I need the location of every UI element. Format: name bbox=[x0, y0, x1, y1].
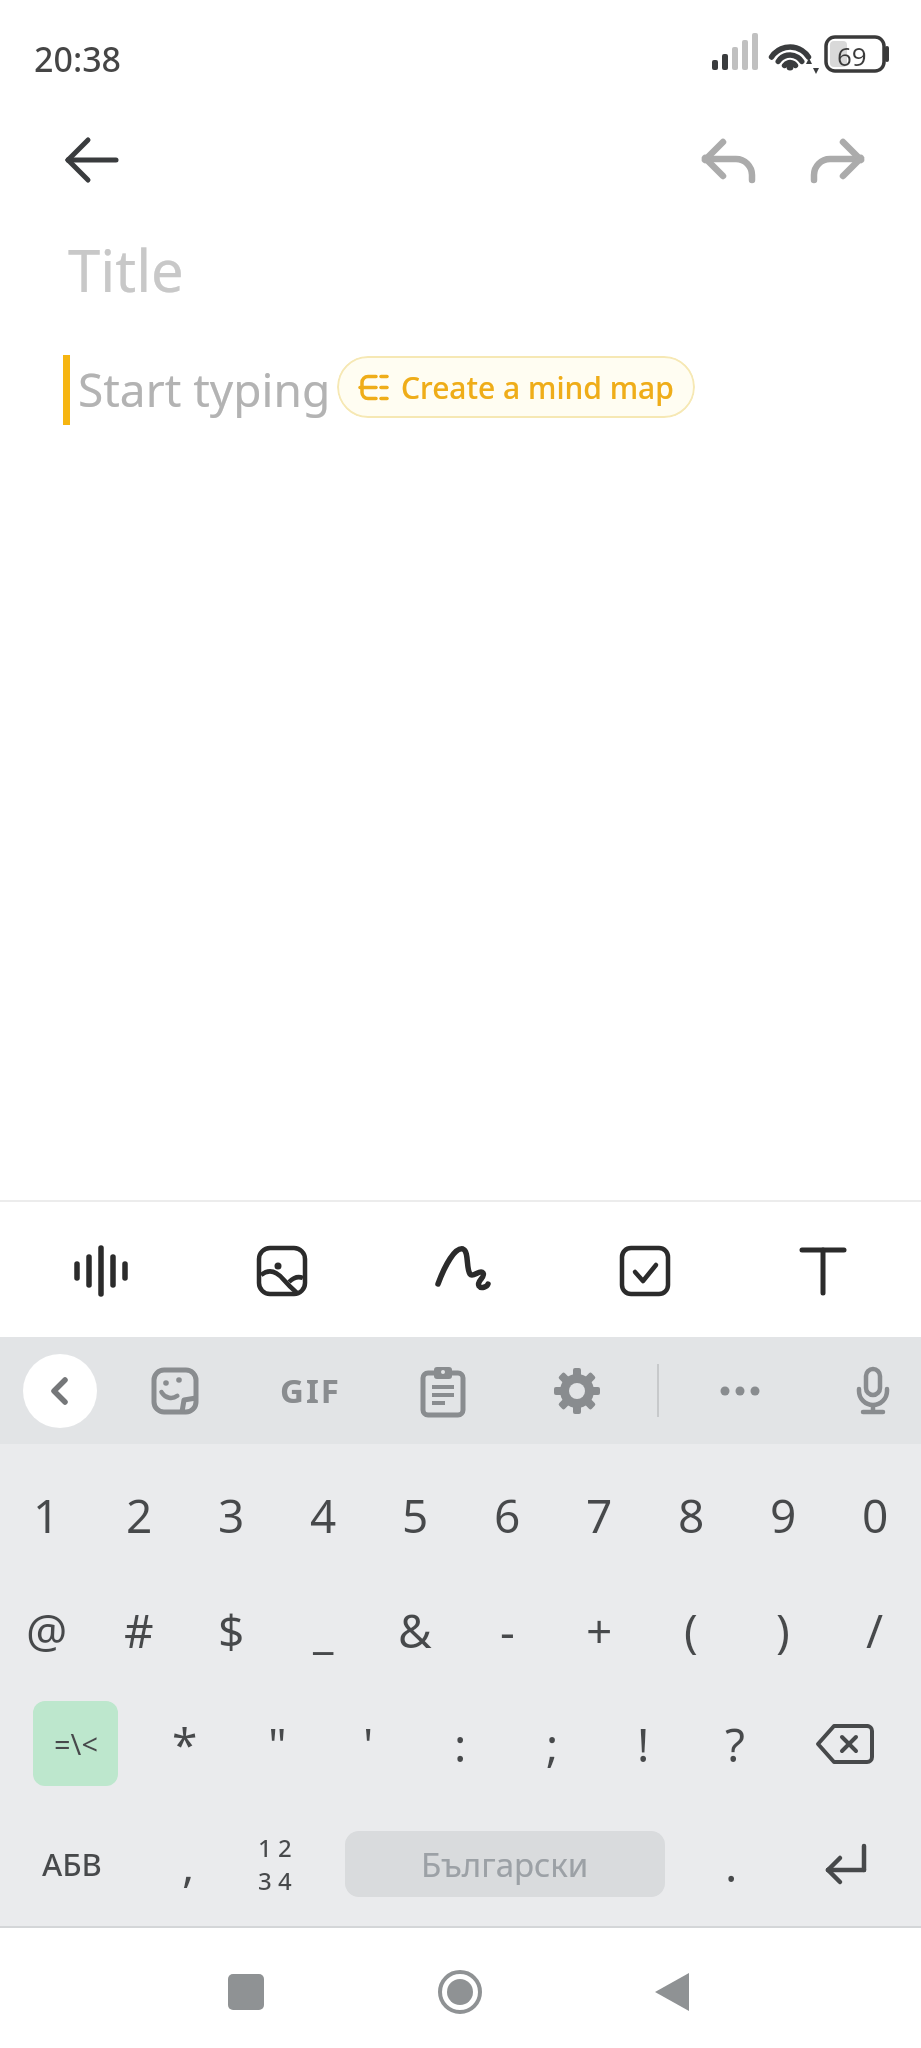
button[interactable] bbox=[790, 1694, 900, 1794]
staticText: 20:38 bbox=[34, 36, 122, 82]
button[interactable] bbox=[790, 1814, 900, 1914]
button[interactable]: GIF bbox=[250, 1337, 370, 1444]
staticText: 5 bbox=[402, 1484, 429, 1547]
staticText: 3 bbox=[218, 1484, 245, 1547]
staticText: ) bbox=[776, 1599, 790, 1662]
staticText: + bbox=[586, 1599, 613, 1662]
button[interactable]: 7 bbox=[553, 1455, 645, 1575]
button[interactable]: * bbox=[139, 1684, 231, 1804]
staticText: 69 bbox=[837, 38, 867, 73]
button[interactable] bbox=[418, 1226, 508, 1316]
staticText: " bbox=[268, 1713, 287, 1776]
staticText: Create a mind map bbox=[401, 367, 674, 408]
button[interactable]: 4 bbox=[277, 1455, 369, 1575]
staticText: ( bbox=[684, 1599, 698, 1662]
button[interactable] bbox=[50, 120, 130, 200]
staticText: 6 bbox=[494, 1484, 521, 1547]
staticText: . bbox=[725, 1833, 738, 1896]
button[interactable] bbox=[695, 1346, 785, 1436]
button[interactable]: АБВ bbox=[12, 1804, 132, 1924]
button[interactable]: 5 bbox=[369, 1455, 461, 1575]
button[interactable]: 8 bbox=[645, 1455, 737, 1575]
button[interactable] bbox=[237, 1226, 327, 1316]
button[interactable] bbox=[778, 1226, 868, 1316]
staticText: ; bbox=[546, 1713, 559, 1776]
button[interactable]: _ bbox=[277, 1570, 369, 1690]
staticText: 2 bbox=[126, 1484, 153, 1547]
staticText: GIF bbox=[280, 1368, 341, 1413]
button[interactable]: 2 bbox=[93, 1455, 185, 1575]
staticText: # bbox=[124, 1599, 154, 1662]
button[interactable] bbox=[828, 1346, 918, 1436]
button[interactable]: $ bbox=[185, 1570, 277, 1690]
button[interactable]: 1 2 bbox=[225, 1814, 325, 1914]
button[interactable] bbox=[415, 1947, 505, 2037]
staticText: ! bbox=[637, 1713, 650, 1776]
staticText: & bbox=[398, 1599, 432, 1662]
button[interactable]: ! bbox=[597, 1684, 689, 1804]
button[interactable]: 9 bbox=[737, 1455, 829, 1575]
button[interactable]: & bbox=[369, 1570, 461, 1690]
staticText: 8 bbox=[678, 1484, 705, 1547]
staticText: 0 bbox=[862, 1484, 889, 1547]
staticText: - bbox=[500, 1599, 515, 1662]
button[interactable] bbox=[627, 1947, 717, 2037]
staticText: / bbox=[866, 1599, 884, 1662]
staticText: 4 bbox=[310, 1484, 337, 1547]
staticText: * bbox=[172, 1713, 198, 1776]
button[interactable] bbox=[130, 1346, 220, 1436]
staticText: =\< bbox=[54, 1724, 98, 1763]
button[interactable]: " bbox=[231, 1684, 323, 1804]
staticText: @ bbox=[26, 1599, 68, 1662]
staticText: 7 bbox=[586, 1484, 613, 1547]
button[interactable]: @ bbox=[0, 1570, 93, 1690]
button[interactable] bbox=[201, 1947, 291, 2037]
button[interactable]: Create a mind map bbox=[337, 356, 695, 418]
staticText: Title bbox=[68, 230, 184, 309]
staticText: Български bbox=[421, 1842, 589, 1887]
button[interactable]: : bbox=[414, 1684, 506, 1804]
button[interactable]: ( bbox=[645, 1570, 737, 1690]
button[interactable]: 1 bbox=[0, 1455, 93, 1575]
staticText: 9 bbox=[770, 1484, 797, 1547]
button[interactable] bbox=[56, 1226, 146, 1316]
button[interactable]: , bbox=[142, 1804, 234, 1924]
staticText: : bbox=[454, 1713, 467, 1776]
button[interactable]: ' bbox=[322, 1684, 414, 1804]
button[interactable]: . bbox=[685, 1804, 777, 1924]
button[interactable]: - bbox=[461, 1570, 553, 1690]
staticText: $ bbox=[218, 1599, 245, 1662]
button[interactable] bbox=[532, 1346, 622, 1436]
button[interactable]: + bbox=[553, 1570, 645, 1690]
staticText: _ bbox=[313, 1599, 334, 1662]
button[interactable]: ; bbox=[506, 1684, 598, 1804]
button[interactable]: ) bbox=[737, 1570, 829, 1690]
button[interactable]: / bbox=[829, 1570, 921, 1690]
button[interactable]: 6 bbox=[461, 1455, 553, 1575]
staticText: 1 bbox=[33, 1484, 60, 1547]
button[interactable] bbox=[600, 1226, 690, 1316]
button[interactable] bbox=[798, 122, 874, 198]
button[interactable] bbox=[23, 1354, 97, 1428]
button[interactable]: # bbox=[93, 1570, 185, 1690]
staticText: , bbox=[182, 1833, 195, 1896]
staticText: Start typing bbox=[78, 358, 331, 421]
staticText: ? bbox=[725, 1713, 745, 1776]
button[interactable]: ? bbox=[689, 1684, 781, 1804]
button[interactable]: 0 bbox=[829, 1455, 921, 1575]
button[interactable]: 3 bbox=[185, 1455, 277, 1575]
staticText: 3 4 bbox=[258, 1864, 292, 1897]
staticText: ' bbox=[363, 1713, 374, 1776]
button[interactable] bbox=[398, 1346, 488, 1436]
staticText: АБВ bbox=[42, 1843, 102, 1885]
button[interactable]: Български bbox=[345, 1831, 665, 1897]
button[interactable] bbox=[692, 122, 768, 198]
staticText: 1 2 bbox=[258, 1831, 292, 1864]
button[interactable]: =\< bbox=[33, 1701, 118, 1786]
